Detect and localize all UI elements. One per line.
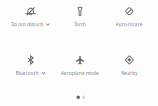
staticText: Do not disturb <box>11 21 43 28</box>
staticText: Nearby <box>121 70 137 76</box>
button[interactable]: Do not disturb <box>6 6 55 28</box>
staticText: Bluetooth <box>16 70 39 76</box>
button[interactable]: Bluetooth <box>6 55 55 76</box>
staticText: Torch <box>74 21 86 28</box>
button[interactable]: Auto-rotate <box>105 6 154 28</box>
staticText: Aeroplane mode <box>61 70 99 76</box>
staticText: Auto-rotate <box>116 21 143 28</box>
button[interactable]: Aeroplane mode <box>55 55 105 76</box>
button[interactable]: Torch <box>55 6 105 28</box>
button[interactable]: Nearby <box>105 55 154 76</box>
